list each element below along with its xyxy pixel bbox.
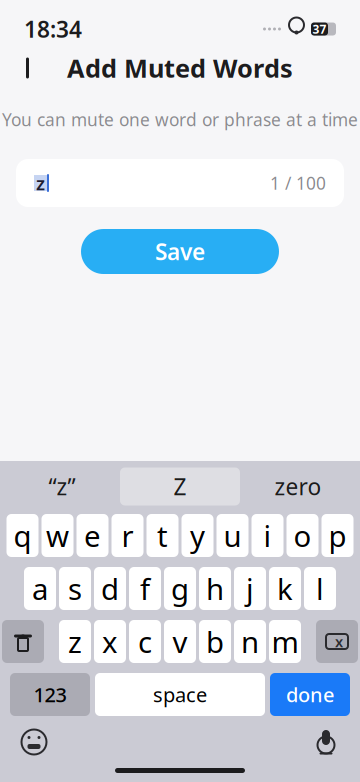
staticText: x xyxy=(335,632,343,651)
staticText: j xyxy=(246,569,254,608)
button[interactable]: u xyxy=(216,514,248,557)
staticText: v xyxy=(172,622,187,661)
button[interactable]: y xyxy=(181,514,213,557)
staticText: done xyxy=(286,681,334,708)
button[interactable]: q xyxy=(6,514,38,557)
staticText: b xyxy=(206,622,224,661)
staticText: k xyxy=(277,569,293,608)
button[interactable]: h xyxy=(199,567,231,610)
staticText: m xyxy=(271,622,298,661)
staticText: 18:34 xyxy=(24,14,82,44)
staticText: z xyxy=(36,171,45,195)
button[interactable]: Emoji xyxy=(12,724,56,760)
staticText: o xyxy=(293,516,311,555)
button[interactable]: s xyxy=(59,567,91,610)
button[interactable]: Z xyxy=(120,467,240,505)
button[interactable]: zero xyxy=(240,467,356,505)
button[interactable]: c xyxy=(129,620,161,663)
staticText: Save xyxy=(155,236,205,267)
staticText: t xyxy=(157,516,168,555)
button[interactable]: v xyxy=(164,620,196,663)
button[interactable]: i xyxy=(251,514,283,557)
button[interactable]: j xyxy=(234,567,266,610)
button[interactable]: g xyxy=(164,567,196,610)
button[interactable]: 123 xyxy=(10,673,90,716)
staticText: “z” xyxy=(48,471,75,501)
button[interactable]: f xyxy=(129,567,161,610)
button[interactable]: w xyxy=(41,514,73,557)
staticText: e xyxy=(84,516,101,555)
button[interactable]: “z” xyxy=(4,467,120,505)
button[interactable]: Back xyxy=(8,46,52,90)
staticText: f xyxy=(140,569,150,608)
staticText: Z xyxy=(173,471,186,501)
staticText: You can mute one word or phrase at a tim… xyxy=(2,108,358,131)
staticText: a xyxy=(32,569,48,608)
staticText: 37 xyxy=(312,21,326,37)
staticText: s xyxy=(68,569,82,608)
staticText: d xyxy=(101,569,119,608)
button[interactable]: n xyxy=(234,620,266,663)
button[interactable]: d xyxy=(94,567,126,610)
staticText: z xyxy=(68,622,82,661)
button[interactable]: a xyxy=(24,567,56,610)
staticText: r xyxy=(121,516,133,555)
button[interactable]: k xyxy=(269,567,301,610)
staticText: 123 xyxy=(33,681,66,708)
staticText: y xyxy=(190,516,205,555)
staticText: x xyxy=(102,622,118,661)
button[interactable]: x xyxy=(94,620,126,663)
button[interactable]: Save xyxy=(81,229,279,274)
staticText: u xyxy=(223,516,241,555)
button[interactable]: o xyxy=(286,514,318,557)
staticText: space xyxy=(153,681,207,708)
staticText: q xyxy=(13,516,31,555)
button[interactable]: Dictation xyxy=(304,724,348,760)
button[interactable]: p xyxy=(321,514,353,557)
staticText: i xyxy=(263,516,271,555)
staticText: h xyxy=(206,569,224,608)
button[interactable]: Delete xyxy=(316,620,358,663)
button[interactable]: t xyxy=(146,514,178,557)
staticText: Add Muted Words xyxy=(67,51,293,85)
button[interactable]: b xyxy=(199,620,231,663)
staticText: 1 / 100 xyxy=(270,171,326,194)
button[interactable]: e xyxy=(76,514,108,557)
staticText: p xyxy=(328,516,346,555)
button[interactable]: space xyxy=(95,673,265,716)
button[interactable]: l xyxy=(304,567,336,610)
button[interactable]: r xyxy=(111,514,143,557)
button[interactable]: Shift xyxy=(2,620,44,663)
button[interactable]: done xyxy=(270,673,350,716)
staticText: g xyxy=(171,569,189,608)
button[interactable]: m xyxy=(269,620,301,663)
staticText: n xyxy=(241,622,259,661)
button[interactable]: z xyxy=(59,620,91,663)
staticText: w xyxy=(46,516,69,555)
staticText: zero xyxy=(274,471,321,501)
staticText: l xyxy=(316,569,324,608)
staticText: c xyxy=(138,622,152,661)
